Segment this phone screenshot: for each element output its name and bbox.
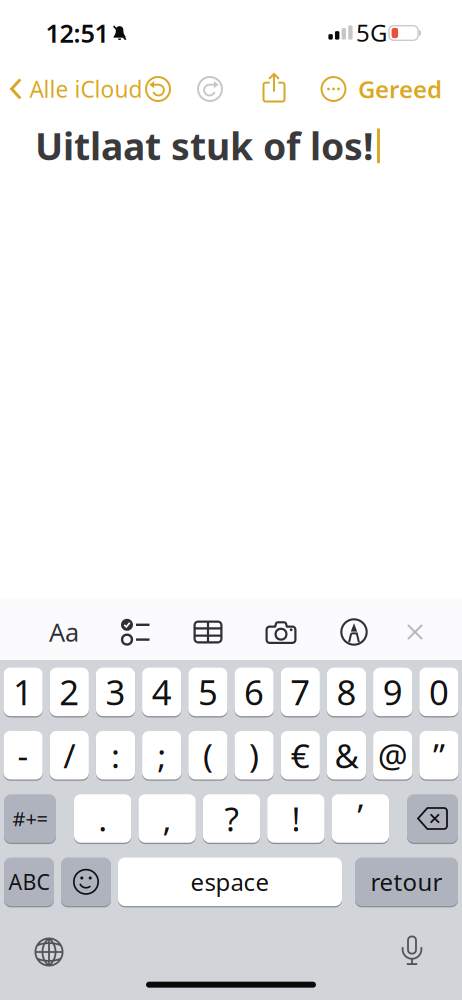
button[interactable]: 9 [373, 667, 412, 717]
staticText: 3 [105, 669, 125, 715]
button[interactable]: Dismiss keyboard [406, 623, 423, 640]
button[interactable]: retour [355, 857, 458, 907]
staticText: Alle iCloud [29, 74, 142, 104]
button[interactable]: ( [188, 730, 227, 780]
button[interactable]: ; [142, 730, 181, 780]
button[interactable]: Redo [196, 75, 223, 102]
staticText: 5 [198, 669, 218, 715]
staticText: / [63, 733, 75, 777]
button[interactable]: . [74, 794, 131, 843]
button[interactable]: #+= [4, 794, 56, 843]
button[interactable]: 8 [327, 667, 366, 717]
staticText: ) [249, 733, 259, 777]
staticText: 6 [244, 669, 264, 715]
button[interactable]: Format [49, 615, 79, 649]
button[interactable] [61, 857, 111, 907]
staticText: € [291, 733, 310, 777]
button[interactable]: @ [373, 730, 412, 780]
button[interactable]: Share [262, 72, 285, 102]
button[interactable]: 7 [281, 667, 320, 717]
button[interactable]: Undo [144, 75, 171, 102]
button[interactable]: 1 [3, 667, 43, 717]
button[interactable]: ABC [4, 857, 54, 907]
button[interactable]: Dictate [400, 934, 424, 968]
button[interactable]: ? [203, 794, 260, 843]
button[interactable]: ’ [332, 794, 389, 843]
staticText: Aa [49, 615, 79, 649]
button[interactable]: 2 [50, 667, 89, 717]
button[interactable]: / [50, 730, 89, 780]
button[interactable]: Gereed [358, 73, 442, 105]
button[interactable]: - [3, 730, 43, 780]
button[interactable]: Markup [340, 618, 368, 646]
staticText: 8 [336, 669, 356, 715]
button[interactable]: Camera [265, 620, 296, 644]
button[interactable]: ) [234, 730, 274, 780]
staticText: ” [433, 733, 445, 777]
staticText: #+= [12, 805, 47, 832]
staticText: & [334, 733, 358, 777]
staticText: 4 [152, 669, 172, 715]
staticText: : [111, 733, 120, 777]
button[interactable]: : [96, 730, 135, 780]
staticText: 0 [429, 669, 449, 715]
button[interactable]: Table [193, 620, 222, 643]
button[interactable]: € [281, 730, 320, 780]
staticText: 2 [59, 669, 79, 715]
staticText: ? [224, 796, 238, 841]
button[interactable]: , [138, 794, 196, 843]
staticText: espace [190, 866, 269, 898]
staticText: ; [157, 733, 166, 777]
button[interactable]: Alle iCloud [9, 74, 142, 104]
button[interactable]: 4 [142, 667, 181, 717]
button[interactable]: ” [419, 730, 458, 780]
button[interactable]: espace [118, 857, 342, 907]
staticText: . [98, 796, 107, 841]
staticText: ABC [8, 868, 49, 896]
staticText: ( [203, 733, 213, 777]
staticText: 1 [13, 669, 33, 715]
staticText: , [163, 796, 172, 841]
staticText: 5G [356, 17, 387, 48]
staticText: @ [378, 733, 408, 777]
button[interactable]: ! [267, 794, 325, 843]
button[interactable]: 3 [96, 667, 135, 717]
staticText: Gereed [358, 73, 442, 105]
staticText: 7 [290, 669, 310, 715]
staticText: ’ [357, 793, 363, 838]
staticText: 9 [383, 669, 403, 715]
staticText: ! [291, 796, 300, 841]
button[interactable]: & [327, 730, 366, 780]
staticText: Uitlaat stuk of los! [35, 121, 374, 171]
staticText: retour [370, 866, 442, 898]
button[interactable]: 5 [188, 667, 227, 717]
button[interactable]: 0 [419, 667, 458, 717]
button[interactable]: Checklist [120, 618, 149, 646]
button[interactable]: Next keyboard [34, 937, 64, 967]
staticText: 12:51 [45, 16, 108, 50]
staticText: - [18, 733, 29, 777]
button[interactable] [407, 794, 458, 843]
button[interactable]: 6 [234, 667, 274, 717]
button[interactable]: More [320, 75, 347, 102]
